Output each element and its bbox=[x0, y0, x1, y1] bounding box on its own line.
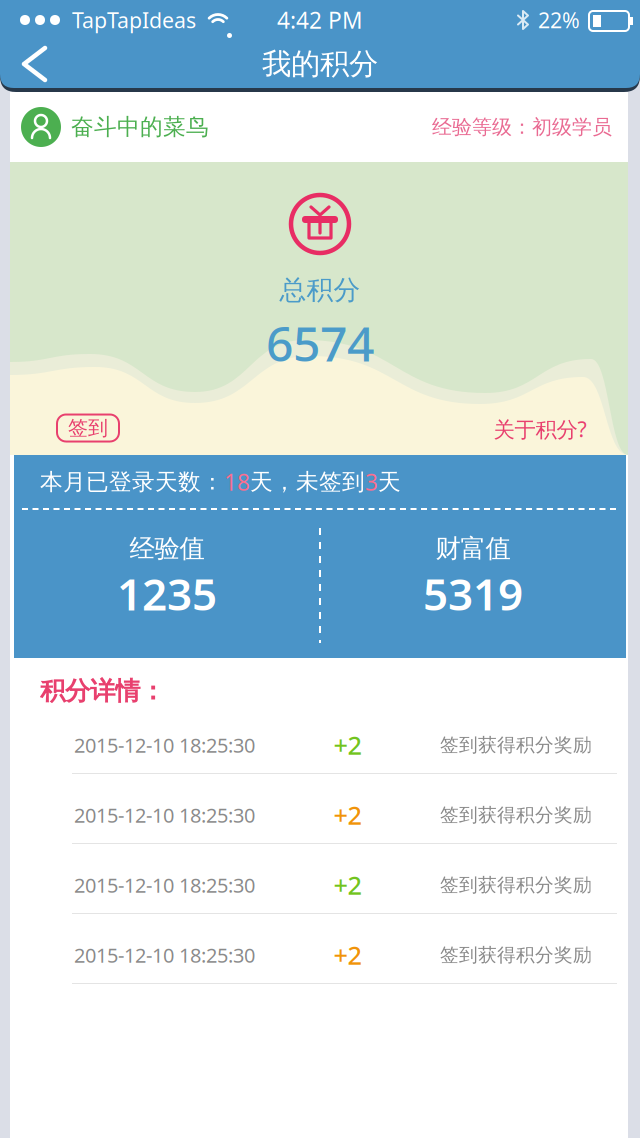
staticText: 2015-12-10 18:25:30 bbox=[74, 942, 255, 968]
staticText: 天，未签到 bbox=[250, 468, 365, 496]
staticText: 4:42 PM bbox=[277, 5, 363, 35]
button[interactable]: Back bbox=[0, 40, 60, 88]
staticText: 积分详情： bbox=[40, 675, 165, 706]
staticText: 经验等级：初级学员 bbox=[432, 115, 612, 139]
staticText: 天 bbox=[378, 468, 401, 496]
staticText: 22% bbox=[538, 6, 580, 34]
button[interactable]: 关于积分? bbox=[493, 415, 586, 443]
staticText: 3 bbox=[365, 467, 378, 497]
staticText: +2 bbox=[333, 798, 361, 832]
staticText: 18 bbox=[224, 467, 250, 497]
button[interactable]: 签到 bbox=[57, 414, 119, 441]
staticText: 签到获得积分奖励 bbox=[440, 943, 592, 966]
staticText: +2 bbox=[333, 728, 361, 762]
staticText: 经验值 bbox=[129, 533, 204, 564]
staticText: 2015-12-10 18:25:30 bbox=[74, 732, 255, 758]
staticText: 2015-12-10 18:25:30 bbox=[74, 802, 255, 828]
staticText: +2 bbox=[333, 938, 361, 972]
staticText: 签到获得积分奖励 bbox=[440, 803, 592, 826]
staticText: 签到获得积分奖励 bbox=[440, 733, 592, 756]
staticText: 奋斗中的菜鸟 bbox=[71, 113, 209, 141]
staticText: 我的积分 bbox=[262, 46, 378, 82]
staticText: 5319 bbox=[423, 564, 523, 622]
staticText: 6574 bbox=[266, 311, 374, 375]
staticText: 财富值 bbox=[435, 533, 510, 564]
staticText: TapTapIdeas bbox=[72, 6, 196, 34]
staticText: 关于积分? bbox=[493, 415, 586, 443]
staticText: 签到获得积分奖励 bbox=[440, 873, 592, 896]
staticText: 1235 bbox=[117, 564, 217, 622]
staticText: 签到 bbox=[68, 416, 108, 440]
staticText: 本月已登录天数： bbox=[40, 468, 224, 496]
staticText: 2015-12-10 18:25:30 bbox=[74, 872, 255, 898]
staticText: 总积分 bbox=[279, 274, 360, 306]
staticText: +2 bbox=[333, 868, 361, 902]
